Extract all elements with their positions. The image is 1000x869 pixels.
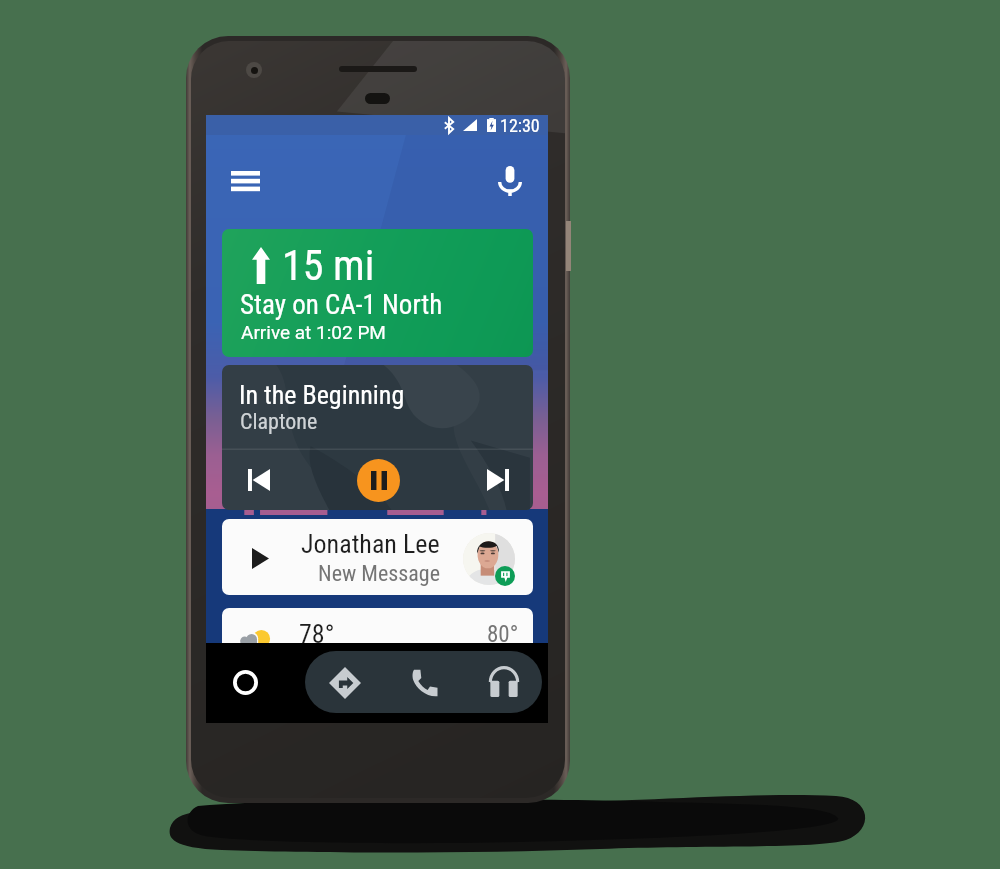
button[interactable]: Home (218, 655, 272, 709)
staticText: Jonathan Lee (301, 529, 440, 559)
button[interactable]: Jonathan Lee (222, 519, 533, 595)
button[interactable]: Pause (357, 459, 400, 502)
button[interactable]: Previous track (241, 462, 277, 498)
button[interactable]: 15 mi (222, 229, 533, 357)
staticText: 80° (487, 621, 519, 648)
button[interactable]: 78° (222, 608, 533, 684)
button[interactable]: Navigation (322, 660, 367, 705)
button[interactable]: Menu (220, 157, 270, 206)
staticText: 15 mi (282, 241, 375, 290)
staticText: 78° (299, 619, 335, 649)
staticText: Arrive at 1:02 PM (241, 321, 386, 343)
button[interactable]: Media (481, 660, 526, 705)
staticText: Stay on CA-1 North (240, 289, 443, 321)
button[interactable]: Phone (401, 660, 446, 705)
staticText: 12:30 (500, 115, 540, 135)
staticText: In the Beginning (239, 380, 405, 410)
button[interactable]: Next track (480, 462, 516, 498)
button[interactable]: Voice search (485, 156, 535, 206)
staticText: Claptone (240, 409, 318, 435)
staticText: New Message (318, 561, 440, 587)
